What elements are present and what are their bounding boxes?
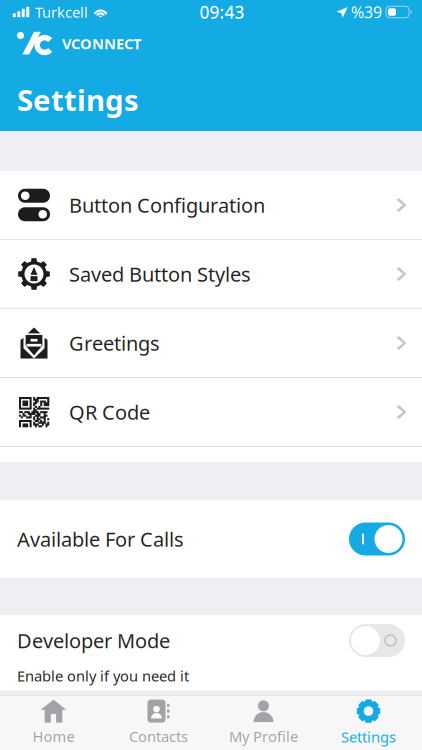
button[interactable]: Button Configuration xyxy=(0,171,422,240)
button[interactable]: Saved Button Styles xyxy=(0,240,422,309)
staticText: Contacts xyxy=(129,727,188,746)
button[interactable]: Developer Mode xyxy=(0,615,422,690)
button[interactable]: Settings xyxy=(316,696,421,750)
staticText: Developer Mode xyxy=(17,627,170,654)
staticText: Home xyxy=(32,727,74,746)
staticText: Settings xyxy=(17,80,139,119)
button[interactable]: Greetings xyxy=(0,309,422,378)
staticText: Saved Button Styles xyxy=(69,261,251,287)
staticText: My Profile xyxy=(229,727,298,746)
button[interactable]: Available For Calls xyxy=(0,500,422,578)
staticText: Available For Calls xyxy=(17,526,184,552)
staticText: Turkcell xyxy=(35,2,88,22)
staticText: Button Configuration xyxy=(69,192,265,218)
staticText: VCONNECT xyxy=(62,34,141,53)
button[interactable]: Contacts xyxy=(106,696,211,750)
button[interactable]: My Profile xyxy=(211,696,316,750)
staticText: Settings xyxy=(341,727,396,747)
button[interactable]: Home xyxy=(1,696,106,750)
staticText: 09:43 xyxy=(199,0,244,23)
staticText: Greetings xyxy=(69,330,160,356)
staticText: QR Code xyxy=(69,399,150,425)
staticText: Enable only if you need it xyxy=(17,666,189,685)
staticText: %39 xyxy=(351,1,382,23)
button[interactable]: QR Code xyxy=(0,378,422,447)
